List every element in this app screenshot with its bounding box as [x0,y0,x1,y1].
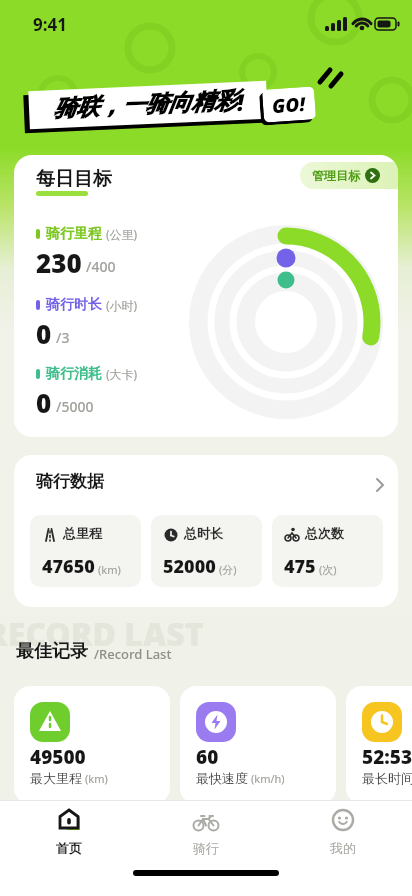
button[interactable]: 我的 [309,806,377,864]
staticText: 总时长 [184,525,223,541]
staticText: ! [236,86,245,117]
staticText: 管理目标 [312,168,360,183]
staticText: 最快速度 [196,770,248,786]
staticText: (公里) [106,226,138,242]
button[interactable]: 骑行 [172,806,240,864]
staticText: (分) [219,562,237,577]
staticText: (大卡) [106,366,138,382]
staticText: 骑行消耗 [46,365,102,383]
staticText: 最佳记录 [16,640,88,663]
staticText: /3 [56,328,70,347]
staticText: 52000 [163,554,216,579]
button[interactable]: 管理目标 [300,162,398,189]
staticText: (km/h) [251,771,285,786]
staticText: (km) [85,771,108,786]
staticText: 首页 [56,840,82,856]
staticText: 每日目标 [36,167,112,191]
staticText: 骑行 [193,840,219,856]
staticText: /Record Last [94,645,172,663]
button[interactable]: 总时长 [151,515,262,587]
staticText: 9:41 [33,13,67,36]
staticText: /400 [86,257,116,276]
button[interactable]: 总次数 [272,515,383,587]
staticText: 49500 [30,744,86,770]
staticText: 骑行数据 [36,471,104,492]
button[interactable]: 首页 [35,806,103,864]
staticText: 0 [36,385,52,420]
staticText: 骑行时长 [46,296,102,314]
staticText: (次) [319,562,337,577]
staticText: 47650 [42,554,95,579]
button[interactable]: 49500 [14,686,170,804]
staticText: GO! [271,91,307,119]
button[interactable]: GO! [262,86,316,123]
button[interactable]: 骑行数据 [14,455,398,607]
staticText: 我的 [330,840,356,856]
staticText: 60 [196,744,219,770]
staticText: 52:53:44 [362,744,412,770]
staticText: (km) [98,562,121,577]
button[interactable]: 60 [180,686,336,804]
staticText: (小时) [106,297,138,313]
button[interactable]: 总里程 [30,515,141,587]
staticText: 最大里程 [30,770,82,786]
staticText: 总次数 [305,525,344,541]
staticText: 475 [284,554,316,579]
staticText: 230 [36,245,82,280]
staticText: 总里程 [63,525,102,541]
button[interactable]: 52:53:44 [346,686,412,804]
staticText: 骑联，一骑向精彩 [52,86,237,123]
staticText: 骑行里程 [46,225,102,243]
staticText: 最长时间 [362,770,412,786]
staticText: 0 [36,316,52,351]
staticText: /5000 [56,397,94,416]
staticText: RECORD LAST [0,612,204,656]
